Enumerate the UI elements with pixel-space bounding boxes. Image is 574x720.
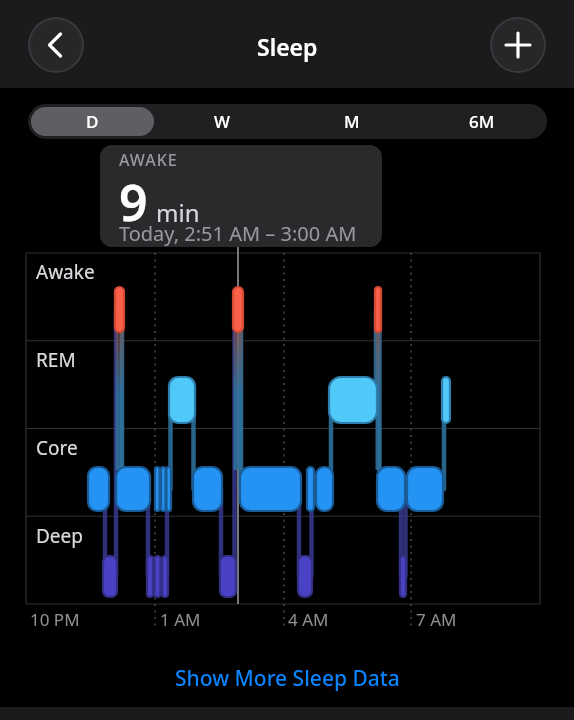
staticText: D (86, 110, 99, 133)
staticText: min (156, 196, 200, 229)
staticText: Show More Sleep Data (175, 664, 400, 693)
button[interactable]: Show More Sleep Data (0, 662, 574, 694)
staticText: M (344, 110, 360, 133)
staticText: Today, 2:51 AM – 3:00 AM (119, 220, 357, 247)
staticText: 1 AM (160, 608, 201, 631)
staticText: REM (36, 347, 76, 373)
button[interactable]: D (31, 107, 154, 136)
staticText: Core (36, 435, 78, 461)
button[interactable]: M (287, 104, 417, 139)
button[interactable]: W (157, 104, 287, 139)
staticText: Sleep (257, 31, 318, 62)
staticText: 10 PM (30, 608, 80, 631)
button[interactable] (490, 17, 546, 73)
staticText: 9 (119, 168, 148, 236)
staticText: 6M (469, 110, 495, 133)
staticText: W (214, 110, 230, 133)
staticText: 4 AM (288, 608, 329, 631)
staticText: Awake (36, 259, 95, 285)
staticText: 7 AM (416, 608, 457, 631)
staticText: Deep (36, 523, 83, 549)
button[interactable]: 6M (417, 104, 547, 139)
button[interactable] (28, 17, 84, 73)
staticText: AWAKE (119, 149, 178, 171)
